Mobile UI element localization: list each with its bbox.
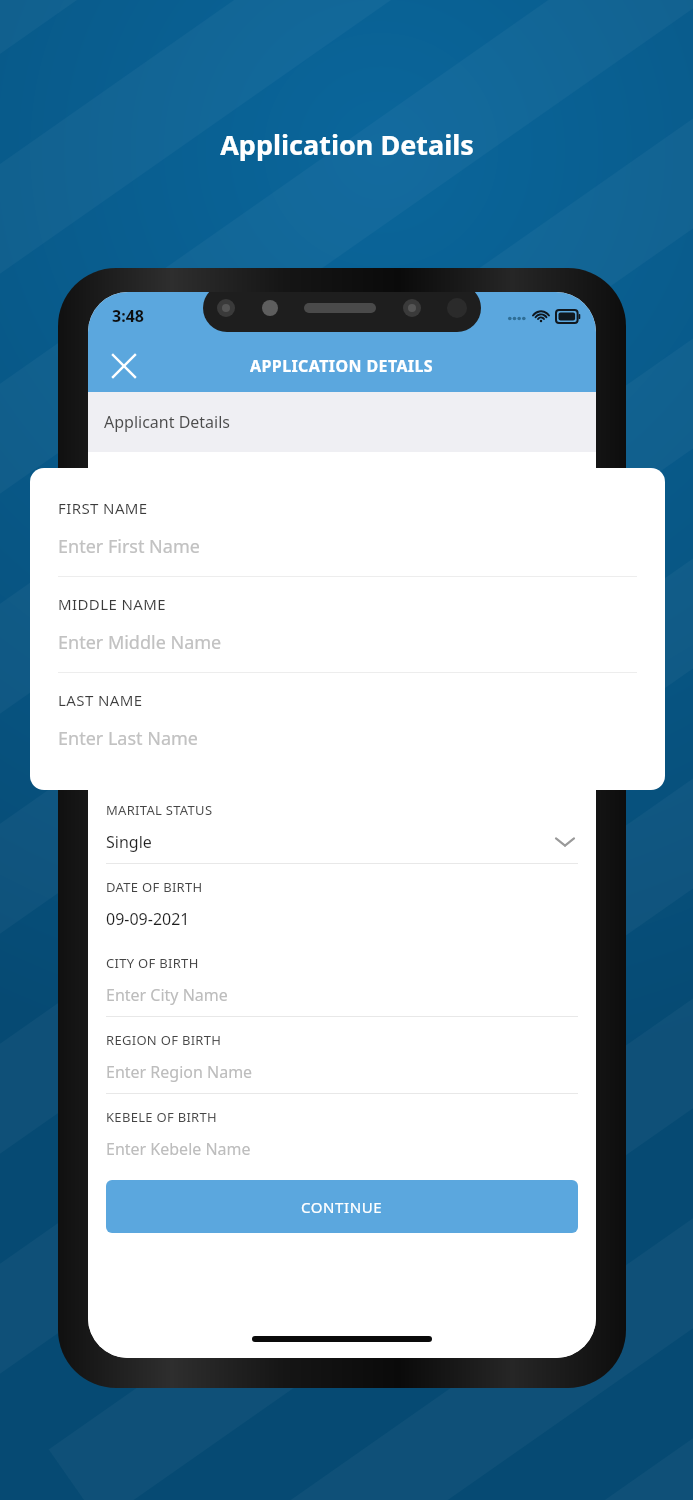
other: Expand bbox=[552, 834, 578, 850]
button[interactable]: REGION OF BIRTH bbox=[106, 1017, 578, 1094]
staticText: MIDDLE NAME bbox=[58, 594, 167, 614]
button[interactable]: LAST NAME bbox=[58, 690, 637, 768]
staticText: Applicant Details bbox=[104, 411, 231, 433]
staticText: KEBELE OF BIRTH bbox=[106, 1108, 217, 1126]
staticText: LAST NAME bbox=[58, 690, 143, 710]
button[interactable]: FIRST NAME bbox=[58, 498, 637, 594]
staticText: MARITAL STATUS bbox=[106, 801, 213, 819]
staticText: DATE OF BIRTH bbox=[106, 878, 203, 896]
button[interactable]: DATE OF BIRTH bbox=[106, 864, 578, 940]
staticText: Single bbox=[106, 831, 552, 853]
staticText: Enter Last Name bbox=[58, 726, 198, 751]
staticText: FIRST NAME bbox=[58, 498, 148, 518]
staticText: REGION OF BIRTH bbox=[106, 1031, 222, 1049]
staticText: 3:48 bbox=[112, 305, 144, 327]
staticText: Enter Region Name bbox=[106, 1061, 578, 1083]
staticText: APPLICATION DETAILS bbox=[250, 355, 434, 377]
staticText: CITY OF BIRTH bbox=[106, 954, 199, 972]
staticText: Enter Kebele Name bbox=[106, 1138, 578, 1160]
staticText: Enter Middle Name bbox=[58, 630, 222, 655]
button[interactable]: CITY OF BIRTH bbox=[106, 940, 578, 1017]
button[interactable]: MARITAL STATUS bbox=[106, 787, 578, 864]
staticText: CONTINUE bbox=[301, 1197, 383, 1217]
staticText: 09-09-2021 bbox=[106, 908, 578, 930]
button[interactable]: KEBELE OF BIRTH bbox=[106, 1094, 578, 1170]
button[interactable]: Close bbox=[102, 344, 146, 388]
staticText: Application Details bbox=[220, 126, 474, 163]
button[interactable]: CONTINUE bbox=[106, 1180, 578, 1233]
button[interactable]: MIDDLE NAME bbox=[58, 594, 637, 690]
staticText: Enter City Name bbox=[106, 984, 578, 1006]
staticText: Enter First Name bbox=[58, 534, 200, 559]
